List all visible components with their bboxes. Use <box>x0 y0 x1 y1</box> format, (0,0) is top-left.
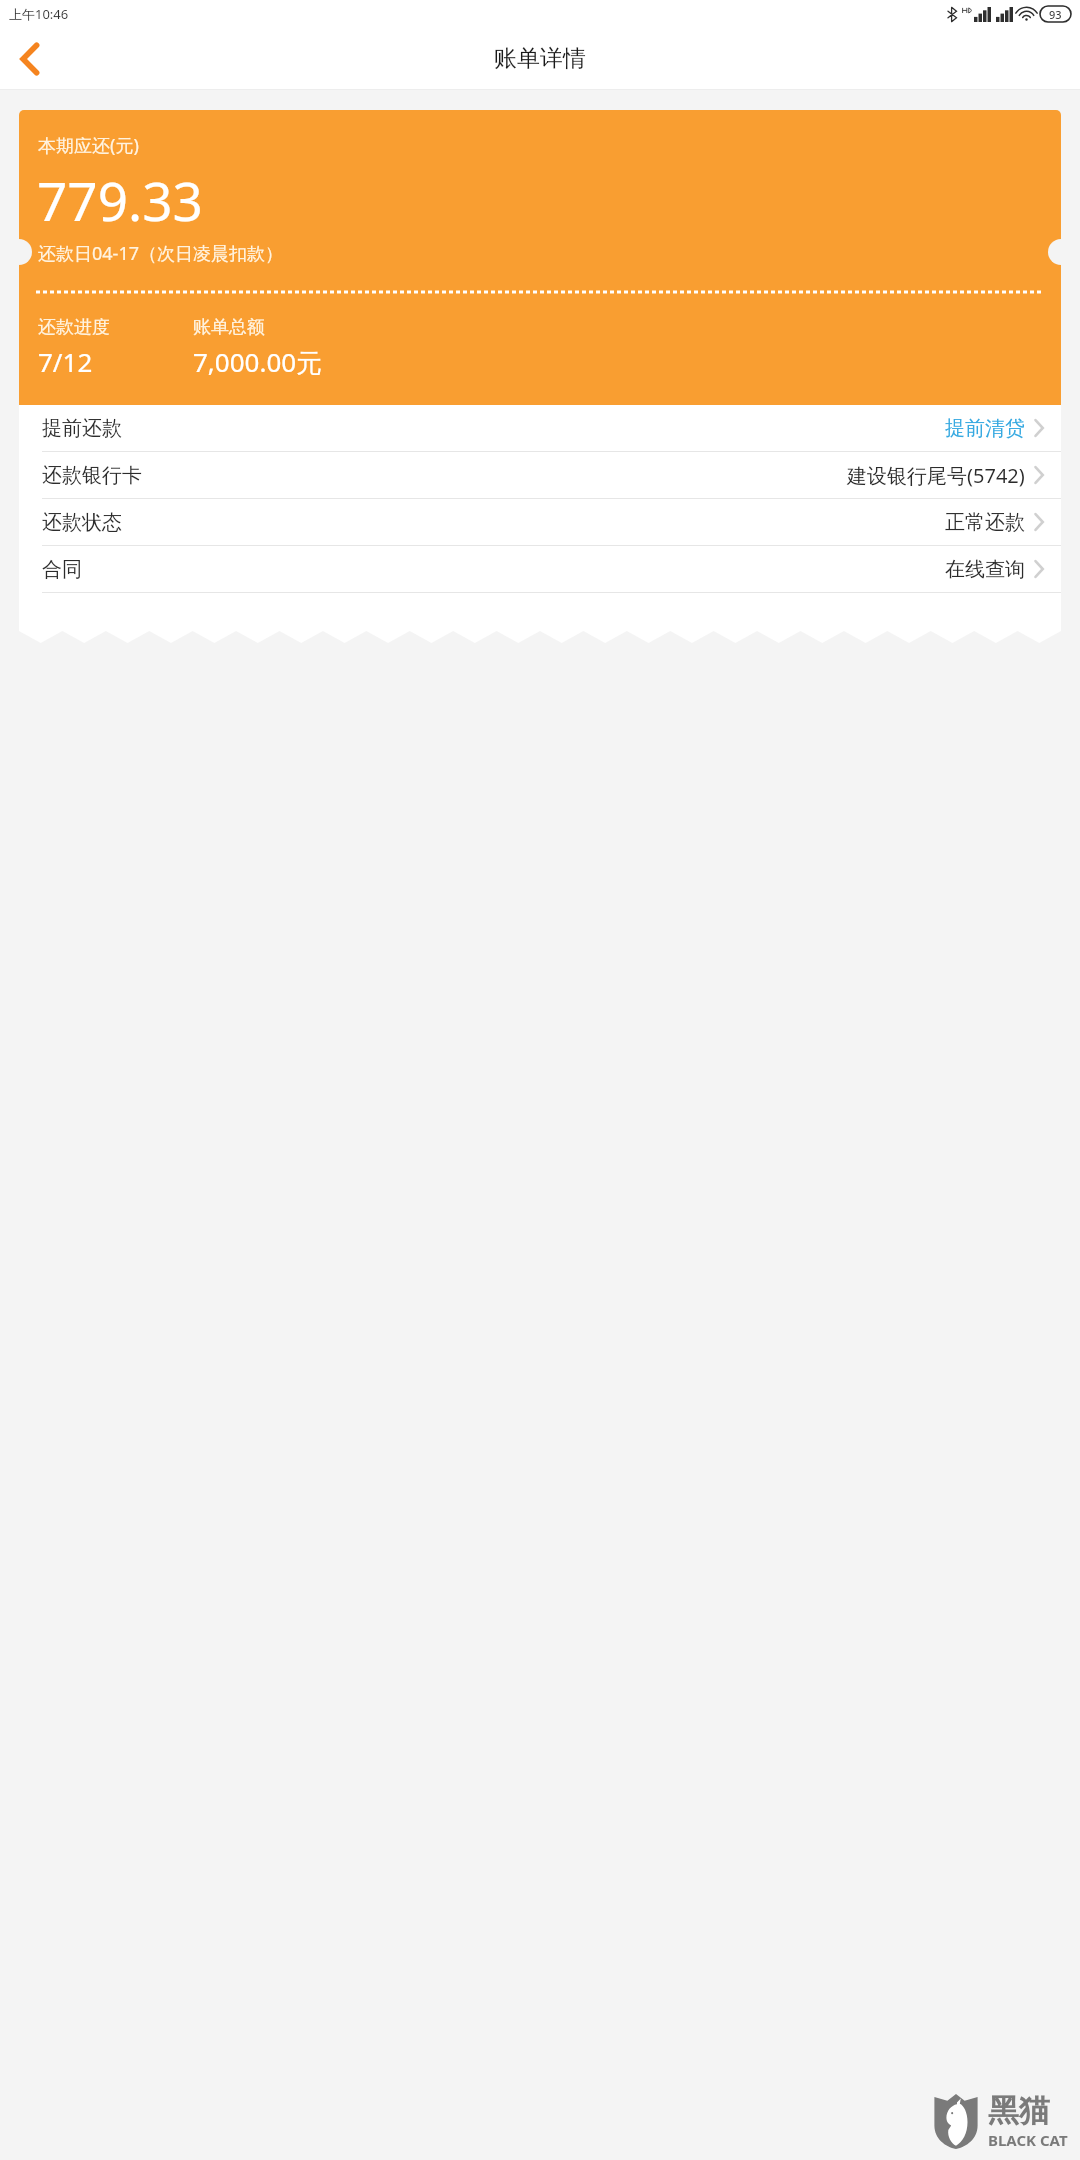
staticText: 合同 <box>42 557 82 582</box>
staticText: 779.33 <box>37 164 203 236</box>
staticText: 还款日04-17（次日凌晨扣款） <box>38 241 283 266</box>
staticText: 7/12 <box>38 344 93 379</box>
staticText: 提前清贷 <box>945 416 1025 441</box>
staticText: 建设银行尾号(5742) <box>847 462 1025 489</box>
button[interactable]: Back <box>0 30 58 88</box>
button[interactable]: 还款状态 <box>19 499 1061 545</box>
button[interactable]: 还款银行卡 <box>19 452 1061 498</box>
staticText: 账单详情 <box>494 44 586 73</box>
staticText: 还款状态 <box>42 510 122 535</box>
button[interactable]: 合同 <box>19 546 1061 592</box>
staticText: 账单总额 <box>193 316 265 339</box>
button[interactable]: 提前还款 <box>19 405 1061 451</box>
staticText: 本期应还(元) <box>38 133 139 158</box>
staticText: 上午10:46 <box>9 5 69 23</box>
staticText: 提前还款 <box>42 416 122 441</box>
staticText: 在线查询 <box>945 557 1025 582</box>
staticText: 黑猫 <box>988 2091 1050 2130</box>
staticText: BLACK CAT <box>988 2130 1068 2150</box>
staticText: 正常还款 <box>945 510 1025 535</box>
staticText: 还款进度 <box>38 316 110 339</box>
staticText: 93 <box>1049 7 1062 22</box>
staticText: 还款银行卡 <box>42 463 142 488</box>
staticText: 7,000.00元 <box>193 344 323 380</box>
